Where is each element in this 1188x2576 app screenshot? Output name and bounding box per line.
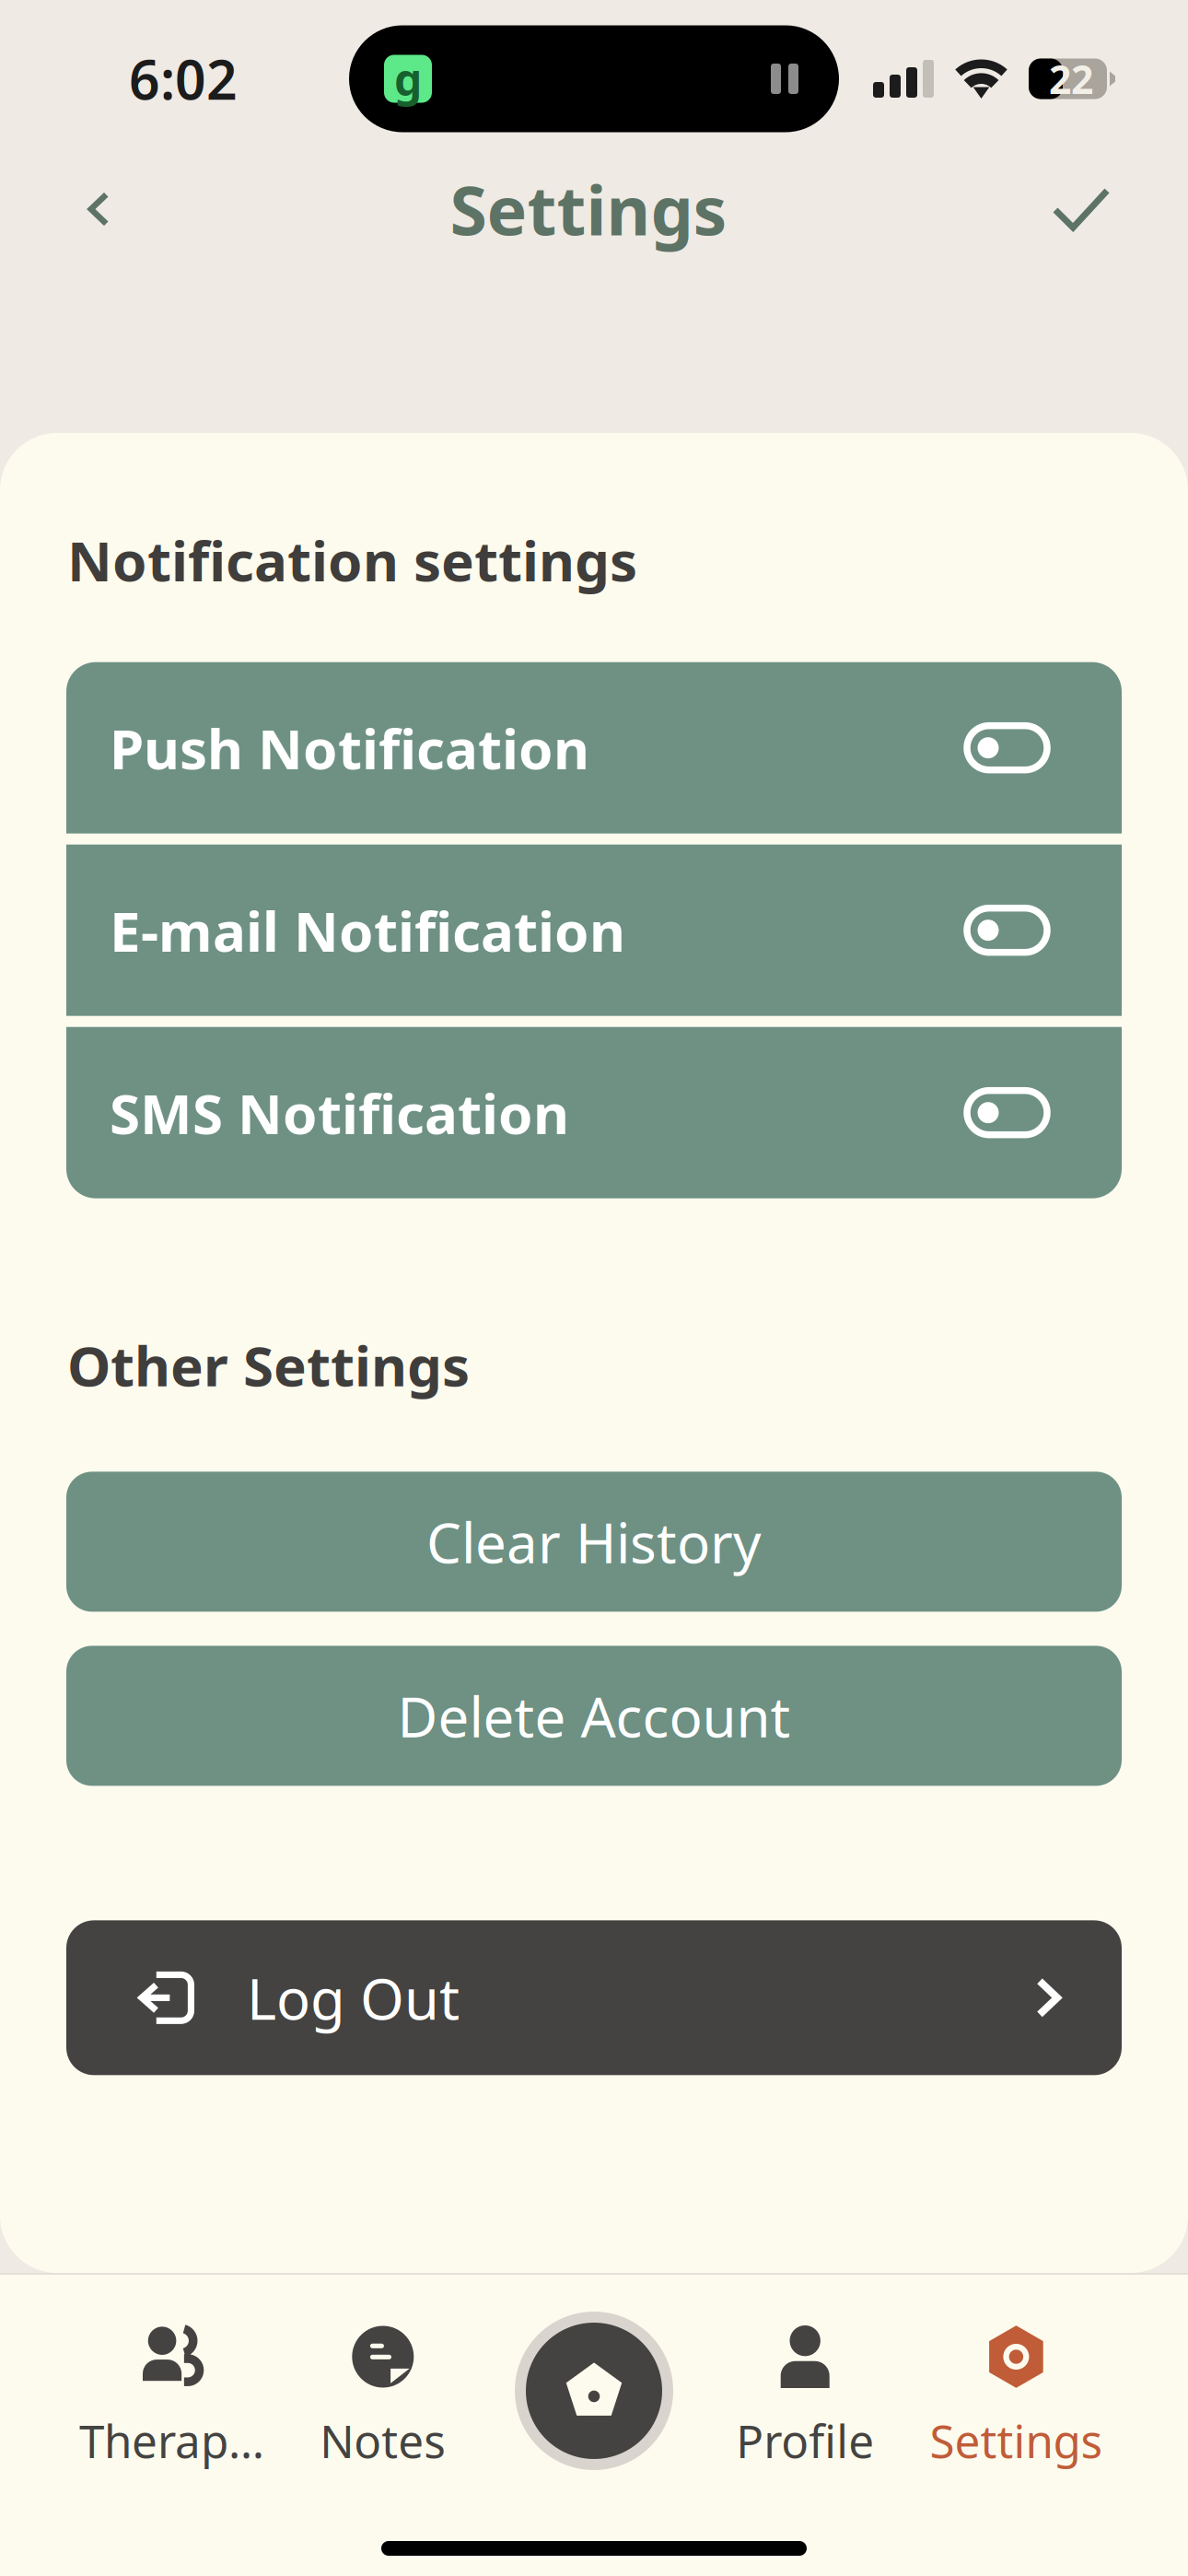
staticText: Delete Account [397,1679,791,1753]
staticText: E-mail Notification [110,893,625,967]
button[interactable]: Back [64,174,134,244]
button[interactable]: Log Out [66,1920,1122,2075]
staticText: Profile [736,2410,874,2471]
button[interactable]: Delete Account [66,1646,1122,1786]
staticText: Push Notification [110,711,589,785]
staticText: Log Out [247,1960,460,2035]
staticText: Settings [450,164,727,254]
button[interactable]: Clear History [66,1472,1122,1612]
button[interactable]: E-mail Notification [66,845,1122,1016]
staticText: Notification settings [67,523,637,597]
button[interactable]: SMS Notification [66,1027,1122,1198]
staticText: Settings [930,2410,1103,2471]
button[interactable]: Profile [700,2325,911,2458]
button[interactable]: Notes [277,2325,488,2458]
staticText: Other Settings [67,1328,470,1402]
button[interactable]: Push Notification [66,662,1122,834]
button[interactable]: Done [1046,174,1116,244]
staticText: Therap… [79,2410,264,2471]
staticText: Notes [320,2410,446,2471]
staticText: SMS Notification [110,1076,569,1149]
staticText: 6:02 [129,43,238,115]
staticText: Clear History [426,1505,762,1578]
button[interactable]: Therap… [66,2325,277,2458]
button[interactable]: Home [515,2312,673,2470]
staticText: g [394,49,422,108]
staticText: 22 [1049,53,1093,105]
button[interactable]: Settings [911,2325,1122,2458]
